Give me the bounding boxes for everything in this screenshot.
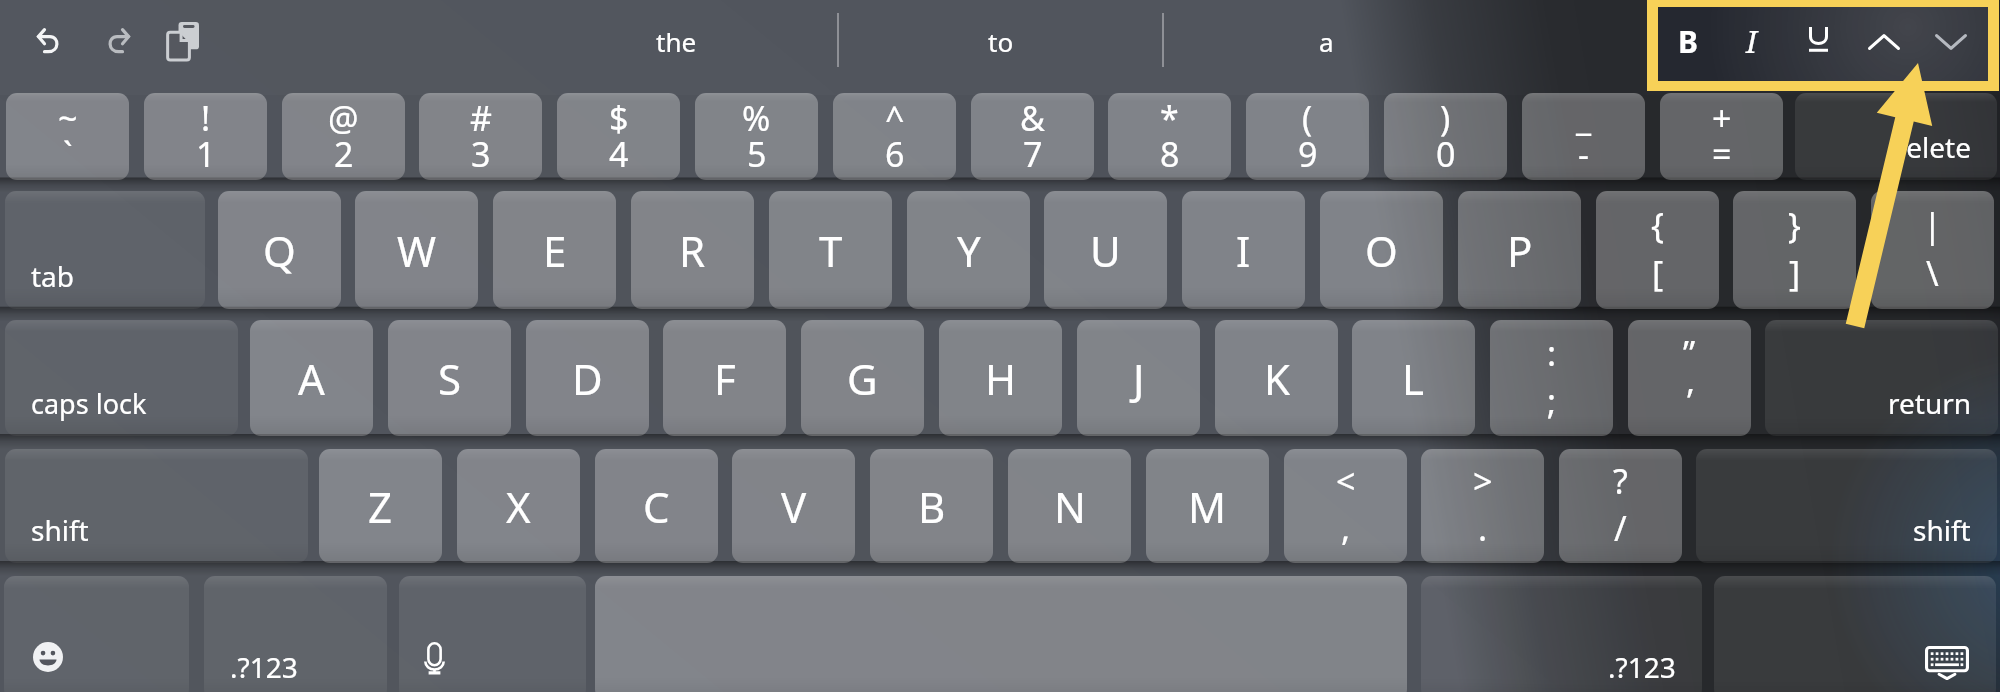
staticText: ” [1683, 330, 1696, 376]
button[interactable]: K [1215, 320, 1338, 436]
staticText: 7 [1023, 131, 1043, 177]
staticText: @ [328, 95, 359, 141]
button[interactable]: : [1490, 320, 1613, 436]
button[interactable]: the [516, 8, 836, 74]
button[interactable]: H [939, 320, 1062, 436]
button[interactable]: Z [319, 449, 442, 563]
button[interactable] [399, 576, 586, 692]
staticText: delete [1889, 128, 1971, 166]
button[interactable]: Y [907, 191, 1030, 309]
staticText: M [1188, 478, 1227, 535]
button[interactable]: B [870, 449, 993, 563]
staticText: _ [1576, 95, 1592, 141]
button[interactable]: Clipboard [148, 5, 218, 77]
button[interactable]: shift [1696, 449, 1997, 563]
button[interactable]: D [526, 320, 649, 436]
staticText: the [656, 24, 697, 59]
button[interactable]: C [595, 449, 718, 563]
button[interactable]: Expand up [1852, 8, 1916, 76]
staticText: J [1133, 350, 1145, 407]
button[interactable]: Underline [1786, 5, 1850, 73]
button[interactable]: & [971, 93, 1094, 180]
button[interactable]: ! [144, 93, 267, 180]
button[interactable]: I [1720, 7, 1784, 75]
staticText: - [1578, 131, 1589, 177]
button[interactable]: E [493, 191, 616, 309]
staticText: I [1746, 21, 1758, 62]
button[interactable]: W [355, 191, 478, 309]
button[interactable]: delete [1795, 93, 1997, 180]
staticText: ~ [58, 95, 78, 141]
button[interactable]: { [1596, 191, 1719, 309]
staticText: < [1336, 458, 1356, 504]
staticText: 8 [1160, 131, 1180, 177]
button[interactable]: U [1044, 191, 1167, 309]
button[interactable]: ~ [6, 93, 129, 180]
button[interactable] [1714, 576, 1996, 692]
button[interactable]: X [457, 449, 580, 563]
button[interactable]: # [419, 93, 542, 180]
button[interactable]: tab [5, 191, 205, 309]
button[interactable]: } [1733, 191, 1856, 309]
button[interactable]: B [1656, 7, 1720, 75]
button[interactable]: $ [557, 93, 680, 180]
button[interactable]: S [388, 320, 511, 436]
staticText: / [1614, 505, 1627, 551]
staticText: P [1507, 222, 1533, 279]
button[interactable]: < [1284, 449, 1407, 563]
staticText: Q [263, 222, 296, 279]
button[interactable]: * [1108, 93, 1231, 180]
staticText: 2 [334, 131, 354, 177]
button[interactable]: Expand down [1919, 8, 1983, 76]
staticText: .?123 [1608, 648, 1676, 686]
button[interactable]: F [663, 320, 786, 436]
button[interactable]: .?123 [1421, 576, 1702, 692]
button[interactable]: V [732, 449, 855, 563]
button[interactable]: @ [282, 93, 405, 180]
button[interactable]: > [1421, 449, 1544, 563]
button[interactable]: + [1660, 93, 1783, 180]
button[interactable]: ” [1628, 320, 1751, 436]
button[interactable]: ) [1384, 93, 1507, 180]
staticText: L [1402, 350, 1425, 407]
button[interactable]: I [1182, 191, 1305, 309]
staticText: T [819, 222, 843, 279]
button[interactable]: J [1077, 320, 1200, 436]
button[interactable]: .?123 [204, 576, 387, 692]
button[interactable]: Undo [14, 3, 84, 75]
button[interactable]: R [631, 191, 754, 309]
button[interactable]: caps lock [5, 320, 238, 436]
button[interactable]: | [1871, 191, 1994, 309]
staticText: ) [1440, 95, 1451, 141]
button[interactable]: L [1352, 320, 1475, 436]
button[interactable]: _ [1522, 93, 1645, 180]
button[interactable]: Redo [82, 3, 152, 75]
button[interactable]: ^ [833, 93, 956, 180]
button[interactable]: O [1320, 191, 1443, 309]
staticText: 3 [471, 131, 491, 177]
button[interactable]: return [1765, 320, 1998, 436]
staticText: X [506, 478, 531, 535]
button[interactable]: to [841, 8, 1161, 74]
button[interactable]: P [1458, 191, 1581, 309]
staticText: caps lock [31, 385, 147, 422]
button[interactable]: M [1146, 449, 1269, 563]
button[interactable]: T [769, 191, 892, 309]
button[interactable]: shift [5, 449, 308, 563]
staticText: B [918, 478, 946, 535]
staticText: F [714, 350, 736, 407]
staticText: ` [63, 131, 73, 177]
button[interactable]: ? [1559, 449, 1682, 563]
staticText: , [1341, 505, 1351, 551]
button[interactable]: % [695, 93, 818, 180]
button[interactable]: G [801, 320, 924, 436]
staticText: W [397, 222, 437, 279]
button[interactable] [4, 576, 189, 692]
button[interactable]: Q [218, 191, 341, 309]
staticText: } [1788, 202, 1801, 248]
button[interactable]: ( [1246, 93, 1369, 180]
button[interactable]: a [1166, 8, 1486, 74]
button[interactable]: N [1008, 449, 1131, 563]
button[interactable]: A [250, 320, 373, 436]
